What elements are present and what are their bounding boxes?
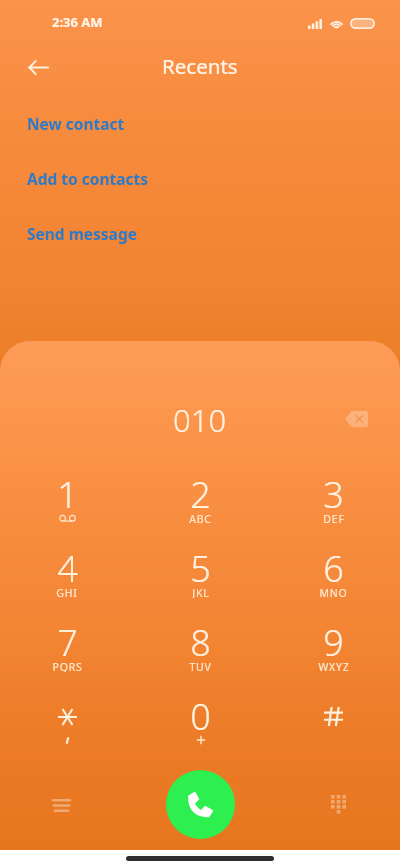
staticText: 2:36 AM <box>52 13 103 31</box>
staticText: JKL <box>192 586 210 598</box>
staticText: New contact <box>27 113 125 134</box>
staticText: MNO <box>319 586 348 598</box>
staticText: 4 <box>57 544 78 582</box>
button[interactable] <box>0 680 134 754</box>
button[interactable]: Back <box>16 44 60 88</box>
button[interactable]: Keypad <box>316 783 360 827</box>
button[interactable]: 5 <box>134 532 267 606</box>
button[interactable]: 1 <box>0 458 134 532</box>
staticText: 0 <box>190 692 211 730</box>
button[interactable]: Backspace <box>335 398 377 440</box>
button[interactable]: 0 <box>134 680 267 754</box>
staticText: 7 <box>57 618 78 656</box>
staticText: WXYZ <box>318 660 350 672</box>
staticText: ABC <box>189 512 212 524</box>
staticText: 1 <box>57 470 78 508</box>
button[interactable]: Send message <box>27 218 137 249</box>
staticText: 3 <box>323 470 344 508</box>
button[interactable]: Add to contacts <box>27 163 149 194</box>
staticText: 010 <box>173 399 227 441</box>
button[interactable]: 6 <box>267 532 400 606</box>
staticText: Recents <box>162 52 238 80</box>
staticText: Send message <box>27 223 137 244</box>
staticText: PQRS <box>52 660 83 672</box>
staticText: 8 <box>190 618 211 656</box>
staticText: 9 <box>323 618 344 656</box>
staticText: Add to contacts <box>27 168 149 189</box>
button[interactable]: 2 <box>134 458 267 532</box>
button[interactable]: Call <box>166 770 235 839</box>
button[interactable]: New contact <box>27 108 125 139</box>
button[interactable]: 4 <box>0 532 134 606</box>
button[interactable]: 3 <box>267 458 400 532</box>
button[interactable]: Call log <box>39 783 83 827</box>
button[interactable] <box>267 680 400 754</box>
staticText: GHI <box>56 586 78 598</box>
button[interactable]: 9 <box>267 606 400 680</box>
staticText: 6 <box>323 544 344 582</box>
staticText: 5 <box>190 544 211 582</box>
staticText: 2 <box>190 470 211 508</box>
button[interactable]: 7 <box>0 606 134 680</box>
staticText: TUV <box>189 660 212 672</box>
staticText: DEF <box>323 512 345 524</box>
button[interactable]: 8 <box>134 606 267 680</box>
